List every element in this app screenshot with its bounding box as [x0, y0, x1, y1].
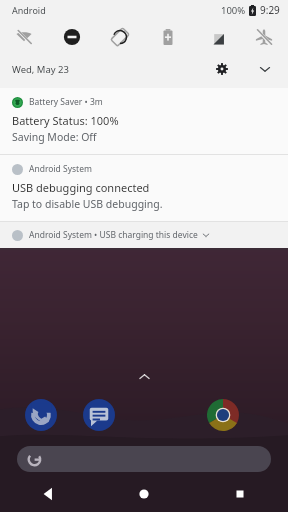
- button[interactable]: Messages: [82, 398, 116, 432]
- button[interactable]: Recent apps: [192, 480, 288, 508]
- staticText: USB debugging connected: [12, 180, 150, 195]
- staticText: Battery Saver • 3m: [29, 96, 103, 108]
- staticText: Saving Mode: Off: [12, 130, 97, 144]
- button[interactable]: Chrome: [206, 398, 240, 432]
- button[interactable]: Mobile data: [192, 20, 240, 54]
- button[interactable]: Back: [0, 480, 96, 508]
- staticText: Tap to disable USB debugging.: [12, 197, 163, 211]
- button[interactable]: Android System • USB charging this devic…: [0, 222, 288, 248]
- staticText: Android System • USB charging this devic…: [29, 229, 198, 241]
- staticText: Android System: [29, 163, 92, 175]
- button[interactable]: Collapse: [252, 56, 278, 82]
- button[interactable]: Home: [96, 480, 192, 508]
- staticText: 100%: [221, 4, 246, 17]
- button[interactable]: Airplane mode: [240, 20, 288, 54]
- button[interactable]: Wi-Fi: [0, 20, 48, 54]
- staticText: Battery Status: 100%: [12, 113, 119, 128]
- button[interactable]: Search: [17, 446, 271, 472]
- staticText: Android: [12, 4, 46, 16]
- button[interactable]: Battery Saver • 3m: [0, 88, 288, 154]
- button[interactable]: Settings: [210, 57, 234, 81]
- button[interactable]: Android System: [0, 155, 288, 221]
- staticText: Wed, May 23: [12, 63, 69, 76]
- button[interactable]: All apps: [0, 366, 288, 386]
- button[interactable]: Battery Saver: [144, 20, 192, 54]
- button[interactable]: Auto rotate: [96, 20, 144, 54]
- staticText: 9:29: [260, 3, 280, 17]
- button[interactable]: Phone: [24, 398, 58, 432]
- button[interactable]: Do not disturb: [48, 20, 96, 54]
